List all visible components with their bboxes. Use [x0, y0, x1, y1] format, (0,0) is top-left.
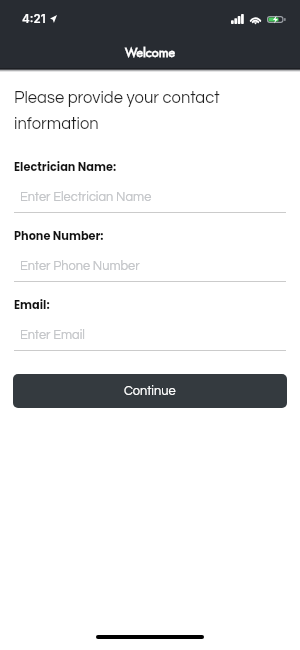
staticText: Please provide your contact information — [14, 89, 286, 132]
staticText: Enter Phone Number — [20, 260, 140, 273]
staticText: 4:21 — [22, 12, 46, 26]
staticText: Continue — [124, 385, 176, 398]
button[interactable]: Continue — [13, 374, 287, 408]
staticText: Enter Electrician Name — [20, 191, 152, 204]
other: Location services — [50, 15, 57, 23]
staticText: Enter Email — [20, 329, 85, 342]
button[interactable]: Enter Phone Number — [14, 255, 286, 277]
staticText: Electrician Name: — [14, 159, 117, 175]
staticText: Welcome — [0, 44, 300, 62]
staticText: Phone Number: — [14, 228, 104, 244]
button[interactable]: Enter Email — [14, 324, 286, 346]
staticText: Email: — [14, 297, 50, 313]
button[interactable]: Enter Electrician Name — [14, 186, 286, 208]
